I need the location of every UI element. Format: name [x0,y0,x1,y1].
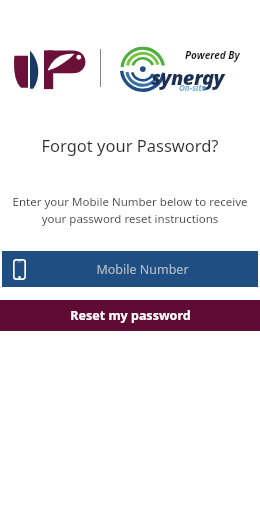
button[interactable]: Mobile phone [2,251,258,287]
staticText: synergy [151,64,224,91]
staticText: Mobile Number [96,261,189,278]
staticText: Reset my password [70,307,191,324]
other: Mobile phone [13,259,26,280]
staticText: Powered By [185,48,240,62]
staticText: Enter your Mobile Number below to receiv… [8,194,252,227]
staticText: Forgot your Password? [41,134,219,156]
button[interactable]: Reset my password [0,300,260,331]
staticText: On-site [179,82,207,93]
